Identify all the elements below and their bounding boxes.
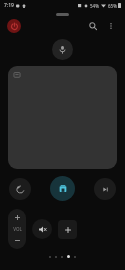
- button[interactable]: Voice search: [52, 39, 73, 60]
- button[interactable]: Next: [94, 178, 116, 200]
- button[interactable]: Mute: [32, 219, 52, 239]
- button[interactable]: Touchpad: [8, 66, 117, 169]
- staticText: VOL: [13, 226, 22, 232]
- button[interactable]: Volume: [8, 209, 26, 249]
- button[interactable]: More options: [104, 19, 118, 33]
- staticText: 65%: [108, 3, 117, 9]
- staticText: 54%: [90, 3, 99, 9]
- button[interactable]: Power: [7, 19, 21, 33]
- button[interactable]: Add button: [58, 220, 77, 239]
- button[interactable]: Home: [50, 176, 75, 201]
- button[interactable]: Search: [85, 18, 101, 34]
- staticText: 7:19: [4, 2, 14, 9]
- button[interactable]: Back: [9, 178, 31, 200]
